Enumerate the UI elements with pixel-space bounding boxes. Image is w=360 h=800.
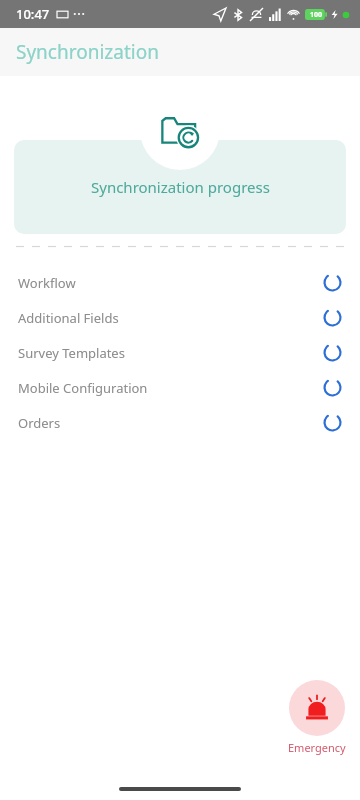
button[interactable]: Emergency — [288, 680, 346, 755]
staticText: Orders — [18, 414, 61, 432]
button[interactable]: Orders — [0, 405, 360, 440]
staticText: Synchronization progress — [91, 177, 270, 197]
button[interactable]: Synchronization — [140, 90, 220, 170]
staticText: Workflow — [18, 274, 76, 292]
staticText: 10:47 — [16, 5, 50, 23]
button[interactable]: Synchronization progress — [14, 140, 346, 234]
button[interactable]: Survey Templates — [0, 335, 360, 370]
staticText: Emergency — [288, 740, 346, 755]
staticText: Synchronization — [16, 39, 159, 65]
staticText: Additional Fields — [18, 309, 119, 327]
button[interactable]: Additional Fields — [0, 300, 360, 335]
button[interactable]: Mobile Configuration — [0, 370, 360, 405]
staticText: Mobile Configuration — [18, 379, 148, 397]
staticText: Survey Templates — [18, 344, 125, 362]
staticText: 100 — [310, 10, 323, 20]
button[interactable]: Workflow — [0, 265, 360, 300]
